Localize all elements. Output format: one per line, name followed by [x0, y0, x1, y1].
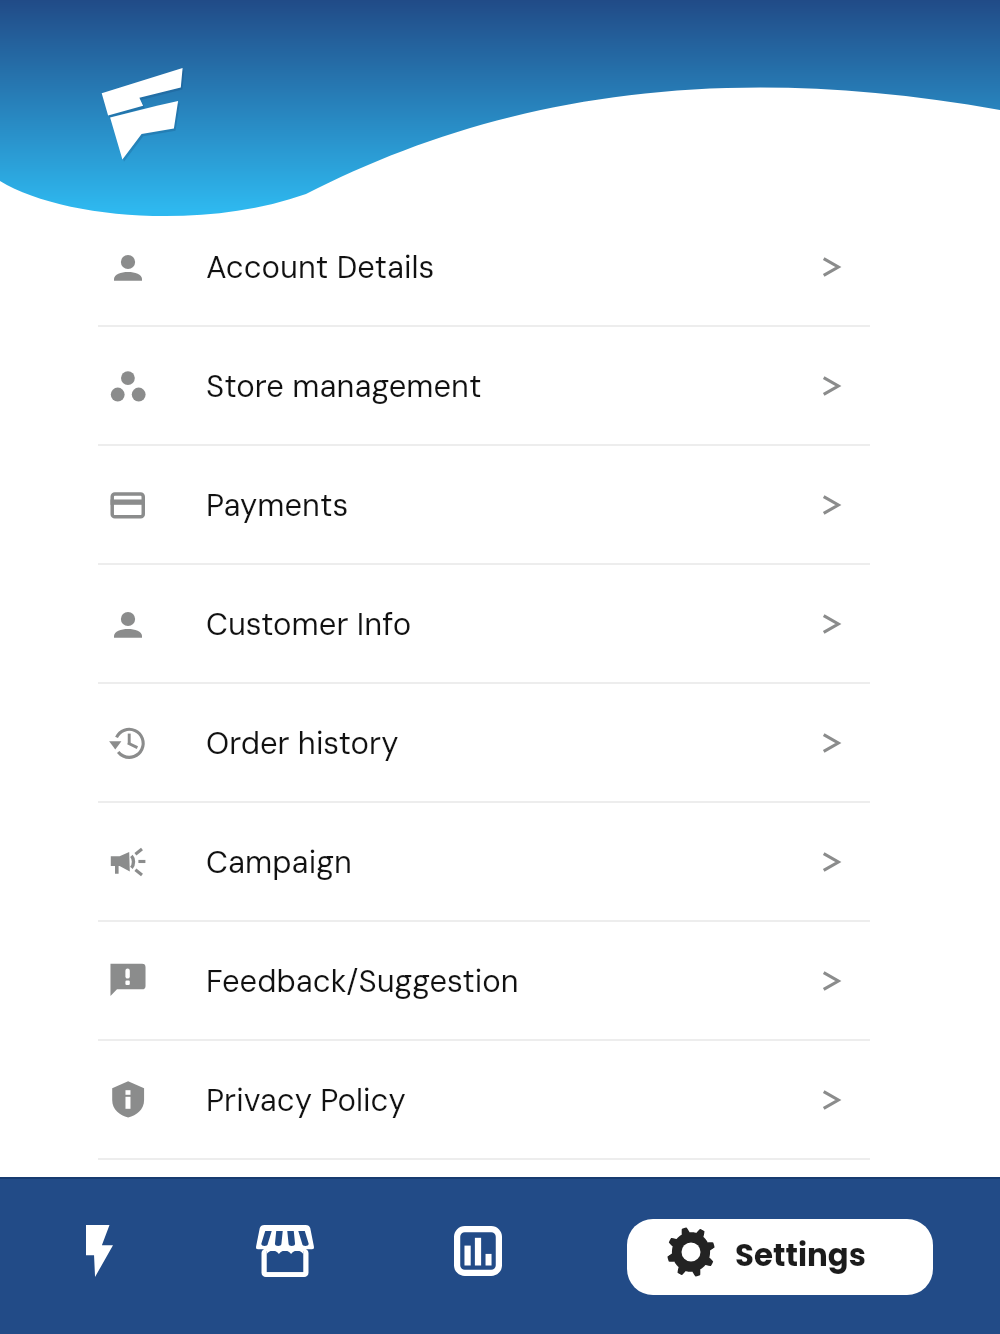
button[interactable]: Store: [234, 1203, 336, 1299]
staticText: Settings: [735, 1234, 866, 1277]
button[interactable]: Customer Info: [0, 565, 1000, 684]
staticText: Payments: [206, 485, 349, 525]
button[interactable]: Account Details: [0, 208, 1000, 327]
staticText: Store management: [206, 366, 482, 406]
staticText: Privacy Policy: [206, 1080, 406, 1120]
staticText: Order history: [206, 723, 399, 763]
button[interactable]: Payments: [0, 446, 1000, 565]
staticText: Feedback/Suggestion: [206, 961, 519, 1001]
button[interactable]: Campaign: [0, 803, 1000, 922]
button[interactable]: Privacy Policy: [0, 1041, 1000, 1160]
staticText: Account Details: [206, 247, 435, 287]
staticText: Customer Info: [206, 604, 412, 644]
button[interactable]: Settings: [627, 1219, 933, 1295]
button[interactable]: Order history: [0, 684, 1000, 803]
button[interactable]: Quick actions: [64, 1203, 135, 1299]
button[interactable]: Reports: [432, 1204, 524, 1298]
button[interactable]: Feedback/Suggestion: [0, 922, 1000, 1041]
staticText: Campaign: [206, 842, 352, 882]
button[interactable]: Store management: [0, 327, 1000, 446]
